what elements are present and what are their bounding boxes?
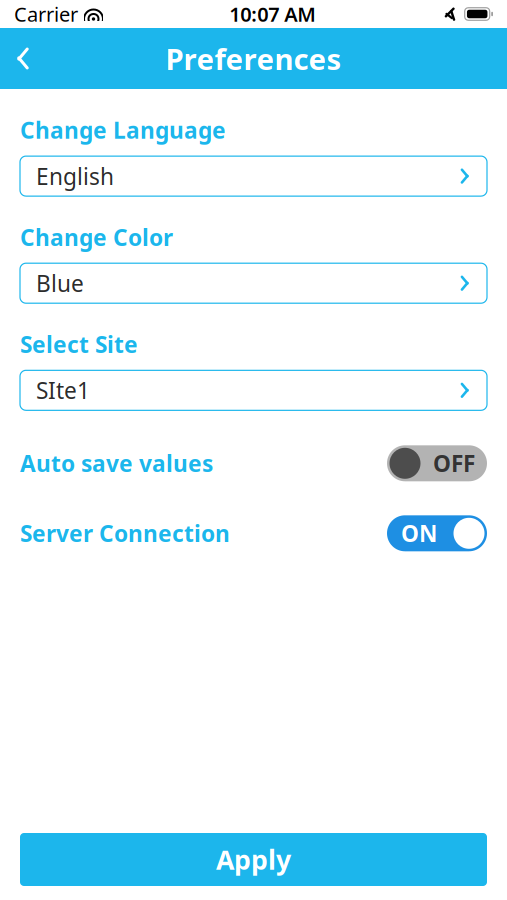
staticText: Auto save values: [20, 448, 213, 478]
button[interactable]: Apply: [20, 833, 487, 886]
staticText: Preferences: [165, 39, 341, 78]
button[interactable]: Server Connection: [20, 515, 487, 551]
button[interactable]: Blue: [20, 263, 487, 303]
staticText: Change Language: [20, 115, 226, 145]
staticText: ON: [401, 518, 437, 548]
staticText: 10:07 AM: [229, 1, 316, 27]
staticText: English: [36, 161, 114, 191]
staticText: OFF: [433, 448, 475, 478]
staticText: Server Connection: [20, 518, 230, 548]
button[interactable]: English: [20, 156, 487, 196]
staticText: SIte1: [36, 375, 90, 405]
button[interactable]: Back: [0, 28, 46, 89]
staticText: Apply: [216, 842, 291, 877]
staticText: Change Color: [20, 222, 173, 252]
button[interactable]: Auto save values: [20, 445, 487, 481]
staticText: Select Site: [20, 329, 138, 359]
staticText: Blue: [36, 268, 84, 298]
staticText: Carrier: [14, 1, 78, 27]
button[interactable]: SIte1: [20, 370, 487, 410]
